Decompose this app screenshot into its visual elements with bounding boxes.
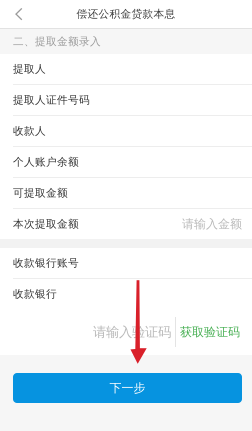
button[interactable]: 提取人证件号码 bbox=[0, 85, 252, 115]
button[interactable]: 获取验证码 bbox=[180, 309, 240, 355]
button[interactable]: 收款银行 bbox=[0, 279, 252, 309]
staticText: 下一步 bbox=[109, 381, 145, 395]
button[interactable]: 提取人 bbox=[0, 54, 252, 84]
staticText: 个人账户余额 bbox=[13, 155, 79, 168]
staticText: 偿还公积金贷款本息 bbox=[76, 7, 175, 20]
button[interactable]: 下一步 bbox=[0, 373, 252, 403]
button[interactable]: 收款人 bbox=[0, 116, 252, 146]
button[interactable]: 个人账户余额 bbox=[0, 147, 252, 177]
staticText: 提取人 bbox=[13, 62, 46, 75]
staticText: 提取人证件号码 bbox=[13, 93, 90, 106]
staticText: 请输入验证码 bbox=[93, 324, 171, 340]
button[interactable]: 可提取金额 bbox=[0, 178, 252, 208]
button[interactable]: Back bbox=[0, 0, 34, 28]
staticText: 获取验证码 bbox=[180, 325, 240, 339]
button[interactable]: 收款银行账号 bbox=[0, 248, 252, 278]
button[interactable]: 本次提取金额 bbox=[0, 209, 252, 239]
staticText: 收款银行 bbox=[13, 287, 57, 300]
staticText: 可提取金额 bbox=[13, 186, 68, 199]
staticText: 请输入金额 bbox=[182, 217, 242, 231]
staticText: 收款银行账号 bbox=[13, 256, 79, 269]
button[interactable]: 请输入验证码 bbox=[93, 309, 171, 355]
staticText: 二、提取金额录入 bbox=[13, 35, 101, 48]
staticText: 本次提取金额 bbox=[13, 217, 79, 230]
staticText: 收款人 bbox=[13, 124, 46, 137]
